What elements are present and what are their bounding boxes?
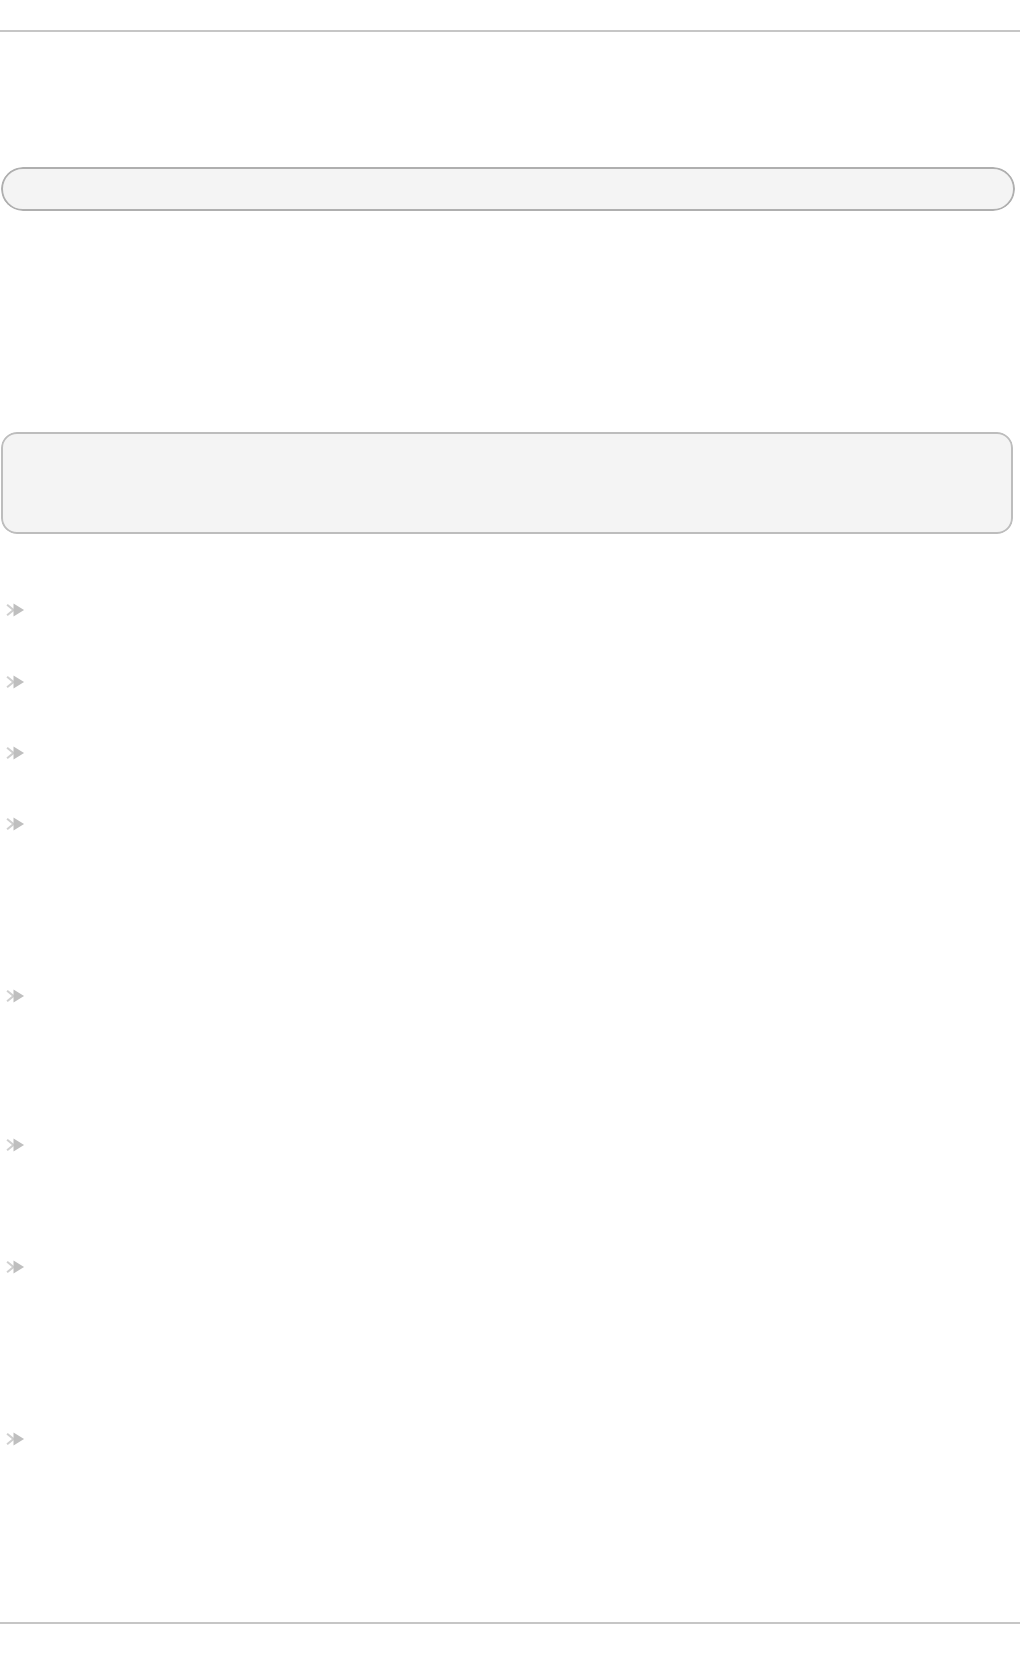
button[interactable]: Expand section — [6, 1429, 28, 1449]
button[interactable]: Expand section — [6, 600, 28, 620]
button[interactable]: Expand section — [6, 1135, 28, 1155]
button[interactable]: Text area — [1, 432, 1013, 534]
button[interactable]: Expand section — [6, 672, 28, 692]
button[interactable]: Search field — [1, 167, 1015, 211]
button[interactable]: Expand section — [6, 814, 28, 834]
button[interactable]: Expand section — [6, 743, 28, 763]
button[interactable]: Expand section — [6, 986, 28, 1006]
button[interactable]: Expand section — [6, 1257, 28, 1277]
